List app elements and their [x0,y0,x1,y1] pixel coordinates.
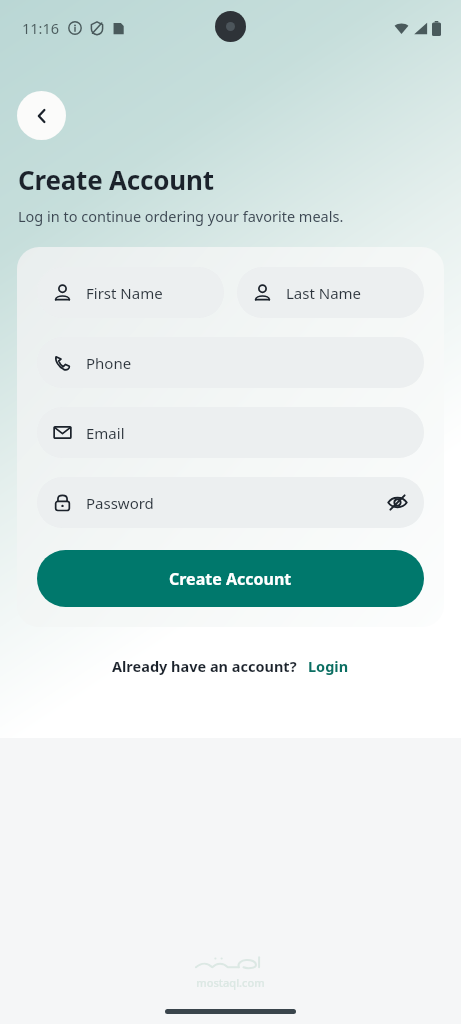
staticText: Phone [86,353,132,373]
staticText: Already have an account? [112,656,297,676]
button[interactable]: Last Name [237,267,424,318]
button[interactable]: Email [37,407,424,458]
button[interactable]: Back [17,91,66,140]
staticText: Create Account [18,162,214,197]
staticText: Create Account [169,568,292,590]
button[interactable]: Login [308,656,349,676]
staticText: mostaql.com [196,975,265,990]
button[interactable]: Toggle password visibility [387,492,408,513]
button[interactable]: First Name [37,267,224,318]
button[interactable]: Phone [37,337,424,388]
button[interactable]: Password [37,477,424,528]
staticText: Login [308,656,349,676]
staticText: Log in to continue ordering your favorit… [18,206,344,226]
staticText: First Name [86,283,163,303]
staticText: Password [86,493,154,513]
staticText: Last Name [286,283,362,303]
staticText: Email [86,423,125,443]
button[interactable]: Create Account [37,550,424,607]
staticText: 11:16 [22,18,60,38]
